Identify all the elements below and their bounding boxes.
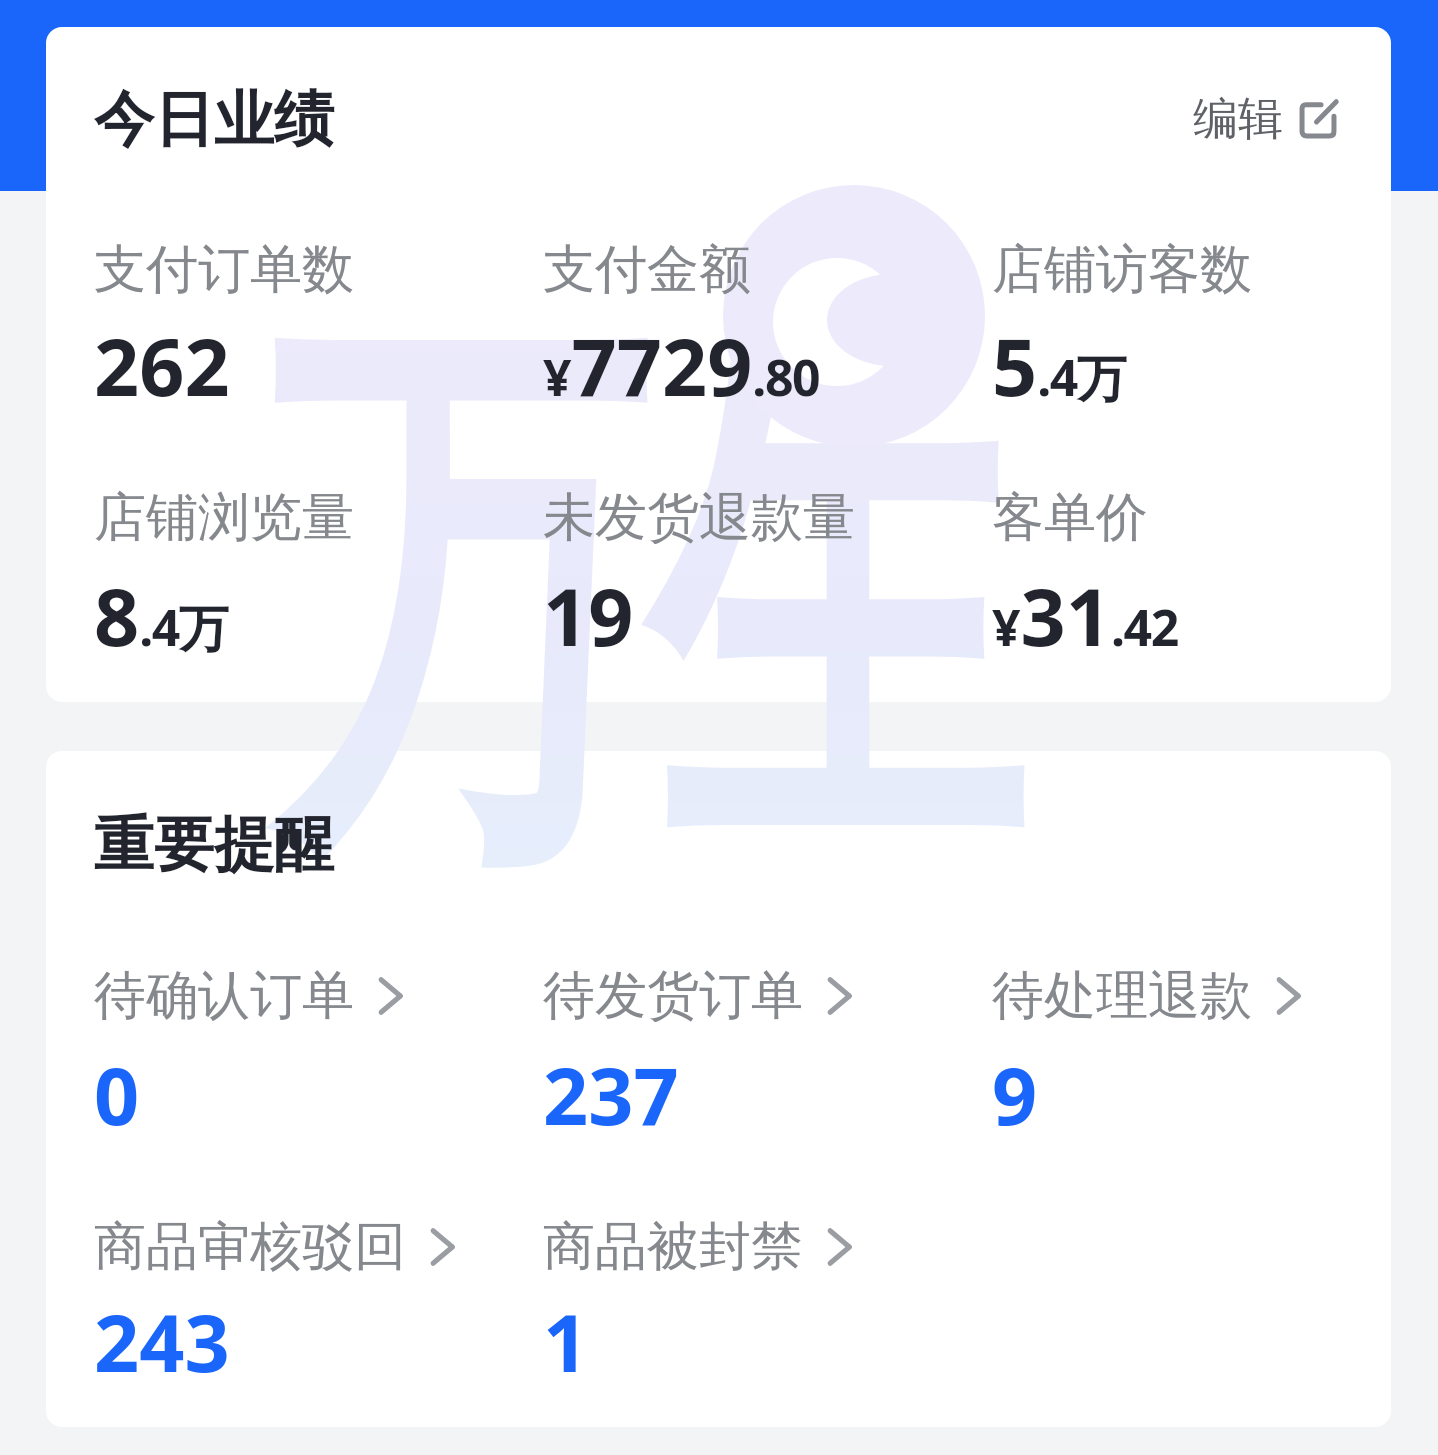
button[interactable]: 待发货订单	[543, 963, 992, 1158]
staticText: 19	[543, 562, 634, 670]
staticText: 9	[992, 1041, 1038, 1149]
other: 编辑	[1299, 101, 1337, 139]
staticText: 商品审核驳回	[94, 1214, 406, 1280]
button[interactable]: 编辑	[1193, 91, 1337, 148]
staticText: 1	[543, 1288, 589, 1396]
staticText: 万生	[269, 242, 1024, 961]
staticText: 5.4万	[992, 312, 1126, 420]
staticText: 262	[94, 312, 230, 420]
staticText: 237	[543, 1041, 679, 1149]
staticText: 重要提醒	[94, 807, 334, 883]
staticText: 未发货退款量	[543, 485, 855, 551]
staticText: 待发货订单	[543, 963, 803, 1029]
staticText: 商品被封禁	[543, 1214, 803, 1280]
staticText: 客单价	[992, 485, 1148, 551]
staticText: 待确认订单	[94, 963, 354, 1029]
button[interactable]: 待处理退款	[992, 963, 1438, 1158]
staticText: 0	[94, 1041, 140, 1149]
staticText: 支付订单数	[94, 237, 354, 303]
staticText: 编辑	[1193, 91, 1283, 148]
button[interactable]: 商品审核驳回	[94, 1214, 543, 1409]
staticText: 8.4万	[94, 562, 228, 670]
staticText: ¥31.42	[992, 562, 1178, 670]
button[interactable]: 商品被封禁	[543, 1214, 992, 1409]
staticText: 243	[94, 1288, 230, 1396]
staticText: 店铺访客数	[992, 237, 1252, 303]
staticText: 待处理退款	[992, 963, 1252, 1029]
staticText: 支付金额	[543, 237, 751, 303]
staticText: 今日业绩	[94, 82, 334, 158]
staticText: 店铺浏览量	[94, 485, 354, 551]
button[interactable]: 待确认订单	[94, 963, 543, 1158]
staticText: ¥7729.80	[543, 312, 820, 420]
